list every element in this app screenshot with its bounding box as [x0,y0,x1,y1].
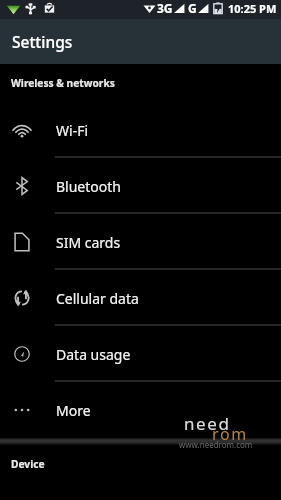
staticText: G [188,0,197,16]
staticText: Bluetooth [56,177,121,196]
staticText: Settings [12,31,73,52]
staticText: Device [11,457,45,471]
button[interactable]: Cellular data [0,270,281,326]
staticText: www.needrom.com [179,439,253,450]
staticText: Wireless & networks [11,76,115,90]
staticText: 3G [157,0,173,16]
staticText: More [56,401,91,420]
staticText: rom [212,423,248,445]
button[interactable]: More [0,382,281,438]
button[interactable]: Bluetooth [0,158,281,214]
staticText: Data usage [56,345,131,364]
button[interactable]: Data usage [0,326,281,382]
button[interactable]: Settings [0,19,281,64]
button[interactable]: SIM cards [0,214,281,270]
staticText: Wi-Fi [56,121,89,140]
staticText: 10:25 PM [228,1,277,16]
staticText: need [184,412,231,435]
staticText: Cellular data [56,289,139,308]
button[interactable]: Wi-Fi [0,102,281,158]
staticText: SIM cards [56,233,121,252]
